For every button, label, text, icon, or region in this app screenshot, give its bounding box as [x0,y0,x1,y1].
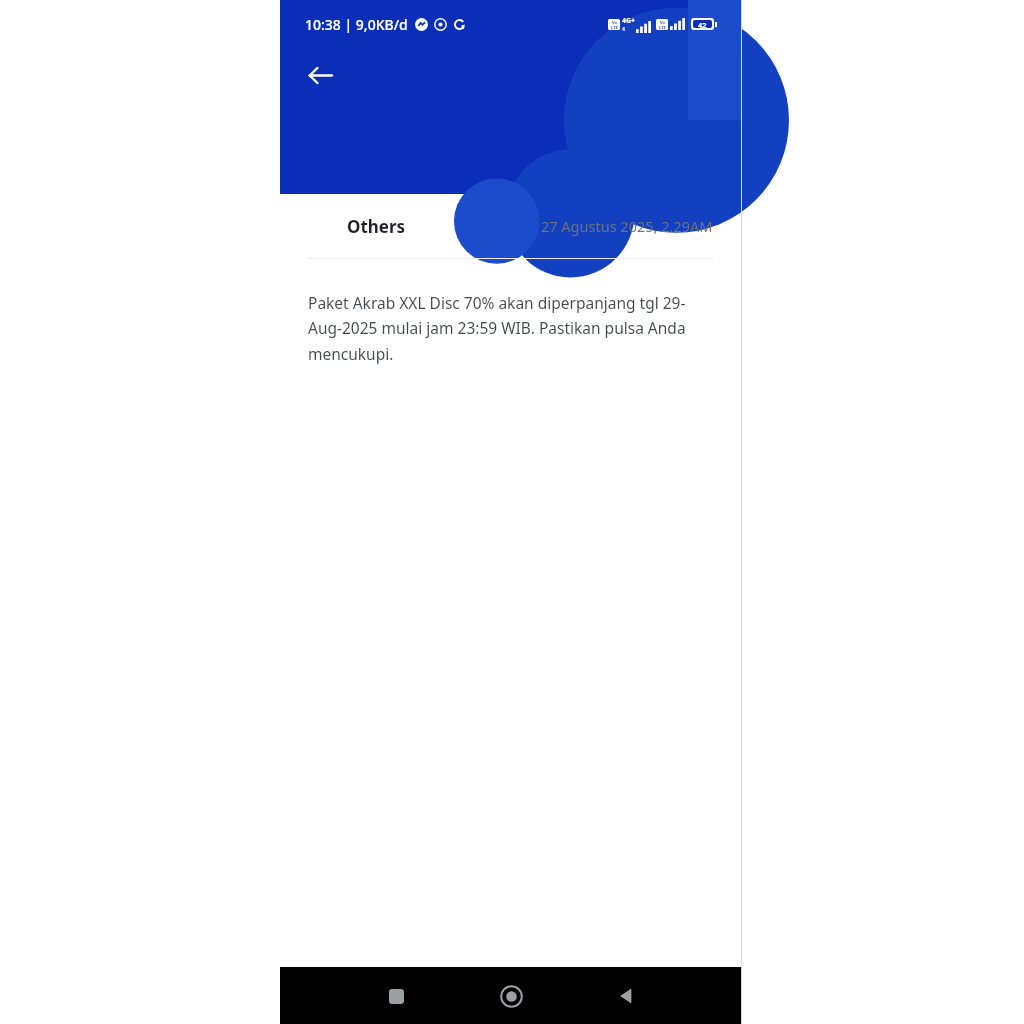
staticText: Vo [660,20,666,25]
button[interactable]: Back [602,972,650,1020]
button[interactable]: Back [292,47,348,103]
staticText: 27 Agustus 2025, 2.29AM [541,216,713,236]
staticText: LTE [659,25,666,30]
staticText: Paket Akrab XXL Disc 70% akan diperpanja… [308,292,707,365]
staticText: Vo [612,20,618,25]
staticText: 4 [622,26,625,33]
staticText: 4G+ [622,16,636,26]
staticText: 42 [698,20,707,28]
button[interactable]: Home [487,972,535,1020]
staticText: LTE [611,25,618,30]
staticText: 10:38 | 9,0KB/d [305,15,408,34]
button[interactable]: Recent apps [372,972,420,1020]
staticText: Others [347,215,406,238]
